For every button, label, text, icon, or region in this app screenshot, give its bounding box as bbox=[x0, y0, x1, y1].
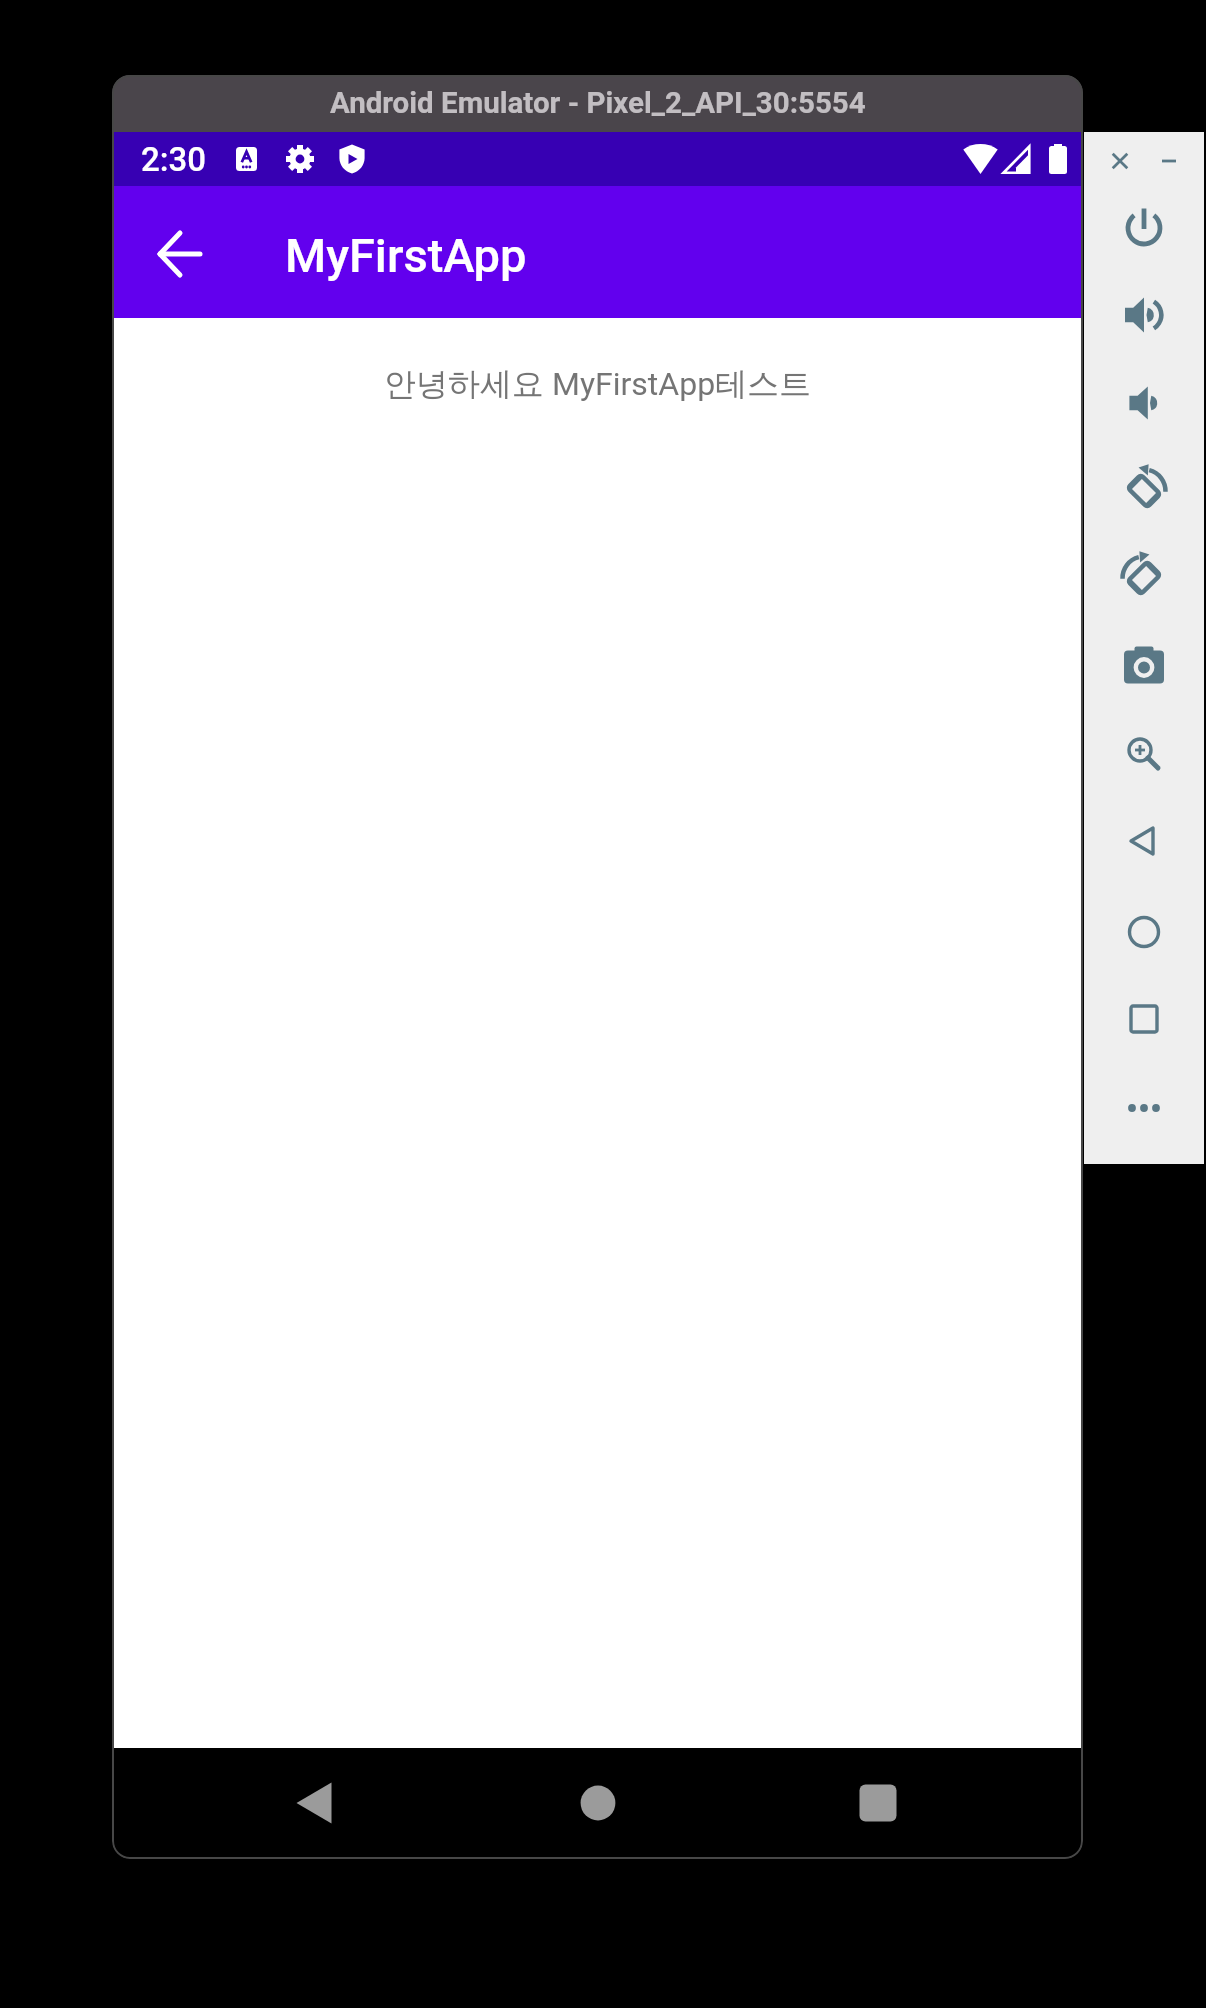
button[interactable] bbox=[1116, 463, 1172, 519]
button[interactable] bbox=[1116, 550, 1172, 606]
button[interactable] bbox=[1116, 726, 1172, 782]
button[interactable] bbox=[287, 1776, 341, 1830]
staticText: 안녕하세요 MyFirstApp테스트 bbox=[384, 364, 812, 404]
staticText: MyFirstApp bbox=[285, 228, 527, 283]
button[interactable] bbox=[1141, 133, 1197, 189]
button[interactable] bbox=[1116, 639, 1172, 695]
button[interactable] bbox=[851, 1776, 905, 1830]
button[interactable] bbox=[571, 1776, 625, 1830]
button[interactable] bbox=[1116, 991, 1172, 1047]
button[interactable] bbox=[1116, 1080, 1172, 1136]
button[interactable] bbox=[1116, 375, 1172, 431]
button[interactable] bbox=[158, 232, 202, 276]
staticText: Android Emulator - Pixel_2_API_30:5554 bbox=[330, 86, 866, 121]
button[interactable] bbox=[1092, 133, 1148, 189]
button[interactable] bbox=[1116, 200, 1172, 256]
staticText: 2:30 bbox=[141, 140, 207, 179]
button[interactable] bbox=[1116, 904, 1172, 960]
button[interactable] bbox=[1116, 813, 1172, 869]
button[interactable] bbox=[1116, 287, 1172, 343]
